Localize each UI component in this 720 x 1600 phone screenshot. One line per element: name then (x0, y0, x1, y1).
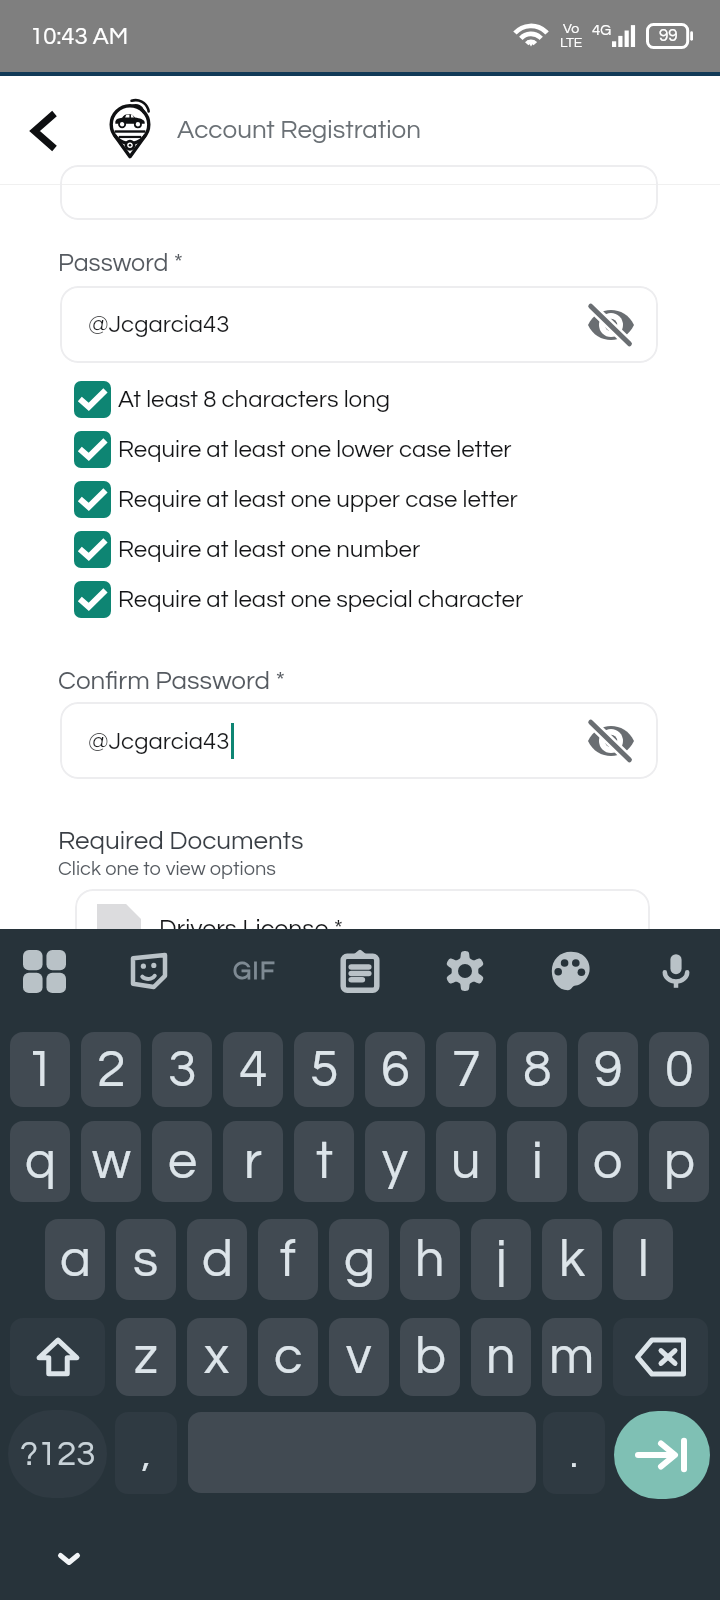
button[interactable]: Voice input (640, 935, 712, 1007)
staticText: p (664, 1135, 695, 1189)
staticText: i (532, 1135, 543, 1189)
button[interactable]: @Jcgarcia43 (60, 286, 658, 363)
staticText: 4G (592, 23, 612, 38)
button[interactable]: a (45, 1219, 105, 1300)
button[interactable]: Enter (614, 1411, 710, 1499)
staticText: s (133, 1233, 159, 1287)
button[interactable]: s (116, 1219, 176, 1300)
button[interactable]: 4 (223, 1032, 283, 1107)
button[interactable]: Stickers (113, 935, 185, 1007)
staticText: Click one to view options (58, 859, 276, 880)
button[interactable]: @Jcgarcia43 (60, 702, 658, 779)
staticText: q (25, 1135, 56, 1189)
staticText: z (134, 1330, 158, 1384)
button[interactable]: GIF (219, 935, 291, 1007)
staticText: Required Documents (58, 828, 304, 855)
button[interactable]: h (400, 1219, 460, 1300)
staticText: h (415, 1233, 445, 1287)
staticText: 4 (239, 1043, 268, 1097)
button[interactable]: w (81, 1121, 141, 1202)
button[interactable]: d (187, 1219, 247, 1300)
button[interactable]: y (365, 1121, 425, 1202)
staticText: d (202, 1233, 233, 1287)
button[interactable]: Settings (429, 935, 501, 1007)
button[interactable]: p (649, 1121, 709, 1202)
button[interactable]: Toggle password visibility (583, 713, 639, 769)
staticText: 0 (665, 1043, 694, 1097)
button[interactable]: 3 (152, 1032, 212, 1107)
button[interactable]: Require at least one special character (74, 581, 524, 618)
staticText: Require at least one lower case letter (118, 437, 512, 462)
button[interactable]: 5 (294, 1032, 354, 1107)
staticText: w (92, 1135, 131, 1189)
button[interactable]: u (436, 1121, 496, 1202)
button[interactable]: b (400, 1318, 460, 1396)
button[interactable]: t (294, 1121, 354, 1202)
staticText: g (344, 1233, 375, 1287)
staticText: , (142, 1436, 151, 1475)
staticText: 99 (659, 27, 678, 45)
button[interactable]: 1 (10, 1032, 70, 1107)
button[interactable]: z (116, 1318, 176, 1396)
button[interactable]: Clipboard (324, 935, 396, 1007)
button[interactable]: 8 (507, 1032, 567, 1107)
button[interactable]: . (543, 1412, 605, 1494)
button[interactable]: 6 (365, 1032, 425, 1107)
staticText: Require at least one number (118, 537, 421, 562)
staticText: x (204, 1330, 230, 1384)
button[interactable]: q (10, 1121, 70, 1202)
staticText: Account Registration (177, 117, 421, 144)
button[interactable]: At least 8 characters long (74, 381, 390, 418)
staticText: 9 (594, 1043, 623, 1097)
button[interactable]: 7 (436, 1032, 496, 1107)
button[interactable]: Back (8, 95, 80, 167)
button[interactable]: o (578, 1121, 638, 1202)
staticText: o (593, 1135, 623, 1189)
button[interactable]: Require at least one upper case letter (74, 481, 518, 518)
staticText: f (280, 1233, 296, 1287)
button[interactable]: e (152, 1121, 212, 1202)
staticText: a (60, 1233, 91, 1287)
button[interactable]: Backspace (613, 1318, 708, 1396)
button[interactable]: Toggle password visibility (583, 297, 639, 353)
button[interactable]: f (258, 1219, 318, 1300)
button[interactable]: ?123 (8, 1410, 107, 1498)
staticText: ?123 (20, 1436, 96, 1472)
staticText: 5 (310, 1043, 339, 1097)
button[interactable]: Require at least one lower case letter (74, 431, 512, 468)
button[interactable]: n (471, 1318, 531, 1396)
button[interactable]: Hide keyboard (45, 1533, 93, 1585)
button[interactable]: x (187, 1318, 247, 1396)
staticText: Drivers License * (159, 916, 343, 942)
button[interactable]: c (258, 1318, 318, 1396)
button[interactable]: Shift (10, 1318, 105, 1396)
staticText: 2 (97, 1043, 126, 1097)
staticText: Vo (563, 22, 580, 36)
staticText: @Jcgarcia43 (88, 729, 230, 754)
button[interactable]: 9 (578, 1032, 638, 1107)
button[interactable]: Drivers License * (75, 889, 650, 979)
button[interactable]: l (613, 1219, 673, 1300)
staticText: Confirm Password * (58, 668, 286, 695)
button[interactable]: , (115, 1412, 177, 1494)
button[interactable]: Apps (8, 935, 80, 1007)
button[interactable]: r (223, 1121, 283, 1202)
staticText: y (382, 1135, 408, 1189)
button[interactable]: v (329, 1318, 389, 1396)
button[interactable]: Require at least one number (74, 531, 421, 568)
button[interactable]: k (542, 1219, 602, 1300)
button[interactable]: g (329, 1219, 389, 1300)
staticText: m (549, 1330, 595, 1384)
staticText: v (346, 1330, 372, 1384)
button[interactable]: m (542, 1318, 602, 1396)
button[interactable]: Theme (535, 935, 607, 1007)
button[interactable]: 2 (81, 1032, 141, 1107)
staticText: l (638, 1233, 649, 1287)
staticText: 7 (452, 1043, 481, 1097)
staticText: b (415, 1330, 446, 1384)
button[interactable]: 0 (649, 1032, 709, 1107)
button[interactable]: i (507, 1121, 567, 1202)
button[interactable]: j (471, 1219, 531, 1300)
staticText: GIF (233, 958, 277, 984)
